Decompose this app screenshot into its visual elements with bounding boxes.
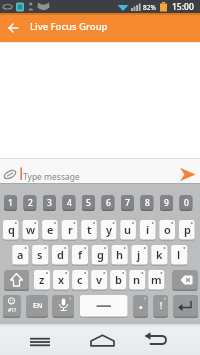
staticText: 7 bbox=[125, 197, 130, 209]
staticText: u bbox=[124, 222, 132, 237]
staticText: v bbox=[96, 272, 103, 287]
staticText: t bbox=[87, 222, 92, 237]
staticText: s bbox=[37, 247, 43, 262]
staticText: 2 bbox=[28, 197, 33, 209]
staticText: p bbox=[184, 222, 191, 237]
staticText: ! bbox=[160, 300, 163, 311]
staticText: y bbox=[106, 222, 113, 237]
staticText: e bbox=[47, 222, 54, 237]
staticText: h bbox=[116, 247, 124, 262]
staticText: o bbox=[164, 222, 171, 237]
staticText: l bbox=[177, 247, 181, 262]
staticText: w bbox=[26, 222, 36, 237]
staticText: 8 bbox=[145, 197, 150, 209]
staticText: f bbox=[78, 247, 83, 262]
staticText: n bbox=[133, 272, 141, 287]
staticText: #1? bbox=[8, 307, 17, 314]
staticText: d bbox=[57, 247, 64, 262]
staticText: c bbox=[77, 272, 83, 287]
staticText: a bbox=[17, 247, 24, 262]
staticText: EN bbox=[33, 301, 43, 311]
staticText: 0 bbox=[184, 197, 189, 209]
staticText: i bbox=[146, 222, 150, 237]
staticText: k bbox=[156, 247, 163, 262]
staticText: r bbox=[68, 222, 73, 237]
staticText: 3 bbox=[47, 197, 52, 209]
staticText: q bbox=[8, 222, 15, 237]
staticText: 6 bbox=[106, 197, 111, 209]
staticText: 9 bbox=[164, 197, 169, 209]
staticText: 15:00 bbox=[172, 1, 194, 13]
staticText: j bbox=[137, 247, 141, 262]
staticText: x bbox=[58, 272, 65, 287]
staticText: b bbox=[115, 272, 122, 287]
staticText: z bbox=[39, 272, 45, 287]
staticText: 5 bbox=[86, 197, 91, 209]
staticText: 82% bbox=[143, 3, 156, 12]
staticText: Type message bbox=[23, 171, 80, 183]
staticText: m bbox=[151, 272, 162, 287]
staticText: g bbox=[97, 247, 104, 262]
staticText: 1 bbox=[8, 197, 13, 209]
staticText: Live Focus Group bbox=[30, 20, 108, 33]
staticText: 4 bbox=[67, 197, 72, 209]
